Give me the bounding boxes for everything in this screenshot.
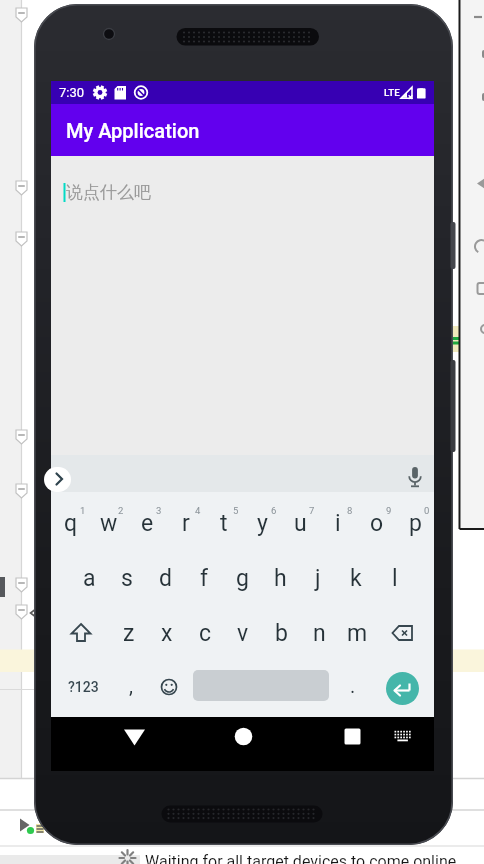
button[interactable]: l <box>376 556 414 600</box>
button[interactable]: s <box>108 556 146 600</box>
button[interactable]: n <box>300 611 338 655</box>
button[interactable]: v <box>224 611 262 655</box>
staticText: f <box>200 565 208 592</box>
staticText: s <box>121 565 133 592</box>
button[interactable]: , <box>112 663 150 707</box>
button[interactable]: . <box>334 663 372 707</box>
staticText: d <box>159 565 172 592</box>
button[interactable]: y <box>243 501 281 545</box>
button[interactable] <box>386 715 424 755</box>
button[interactable]: My Application <box>51 104 434 156</box>
staticText: . <box>350 674 356 697</box>
button[interactable]: o <box>358 501 396 545</box>
staticText: 5 <box>233 505 239 516</box>
button[interactable]: i <box>319 501 357 545</box>
staticText: LTE <box>384 87 400 98</box>
button[interactable]: h <box>261 556 299 600</box>
staticText: 1 <box>80 505 86 516</box>
staticText: g <box>236 565 249 592</box>
staticText: 9 <box>386 505 392 516</box>
button[interactable]: u <box>281 501 319 545</box>
staticText: 说点什么吧 <box>66 182 151 202</box>
button[interactable]: f <box>185 556 223 600</box>
staticText: 7:30 <box>59 85 85 100</box>
staticText: , <box>129 674 133 697</box>
button[interactable]: e <box>128 501 166 545</box>
staticText: r <box>182 510 190 537</box>
staticText: b <box>275 620 288 647</box>
button[interactable] <box>386 672 419 705</box>
button[interactable]: ?123 <box>64 673 102 701</box>
staticText: i <box>335 510 341 537</box>
button[interactable] <box>110 715 150 755</box>
staticText: l <box>392 565 398 592</box>
button[interactable] <box>44 467 71 492</box>
staticText: q <box>64 510 78 537</box>
staticText: 3 <box>156 505 162 516</box>
staticText: p <box>409 510 422 537</box>
button[interactable] <box>51 156 434 455</box>
button[interactable]: q <box>52 501 90 545</box>
button[interactable]: a <box>70 556 108 600</box>
staticText: 7 <box>309 505 315 516</box>
button[interactable]: b <box>262 611 300 655</box>
staticText: c <box>199 620 212 647</box>
staticText: w <box>100 510 118 537</box>
staticText: o <box>370 510 384 537</box>
button[interactable] <box>223 715 263 755</box>
staticText: My Application <box>66 119 200 142</box>
staticText: Waiting for all target devices to come o… <box>145 852 457 864</box>
staticText: 6 <box>271 505 277 516</box>
staticText: 0 <box>424 505 430 516</box>
staticText: 8 <box>347 505 353 516</box>
button[interactable] <box>333 715 373 755</box>
staticText: e <box>141 510 154 537</box>
staticText: v <box>237 620 249 647</box>
staticText: u <box>294 510 307 537</box>
button[interactable]: k <box>337 556 375 600</box>
staticText: n <box>313 620 326 647</box>
button[interactable]: c <box>186 611 224 655</box>
button[interactable]: g <box>223 556 261 600</box>
staticText: ?123 <box>68 679 99 695</box>
button[interactable]: r <box>167 501 205 545</box>
button[interactable]: w <box>90 501 128 545</box>
staticText: m <box>347 620 368 647</box>
staticText: k <box>350 565 362 592</box>
staticText: j <box>315 565 321 592</box>
staticText: h <box>274 565 287 592</box>
staticText: 2 <box>118 505 124 516</box>
button[interactable]: d <box>146 556 184 600</box>
staticText: t <box>220 510 228 537</box>
staticText: y <box>257 510 268 537</box>
button[interactable]: z <box>110 611 148 655</box>
button[interactable]: j <box>299 556 337 600</box>
staticText: x <box>161 620 173 647</box>
button[interactable]: p <box>396 501 434 545</box>
staticText: a <box>83 565 96 592</box>
staticText: 4 <box>195 505 201 516</box>
button[interactable]: t <box>205 501 243 545</box>
staticText: z <box>123 620 135 647</box>
button[interactable]: m <box>338 611 376 655</box>
button[interactable]: x <box>148 611 186 655</box>
